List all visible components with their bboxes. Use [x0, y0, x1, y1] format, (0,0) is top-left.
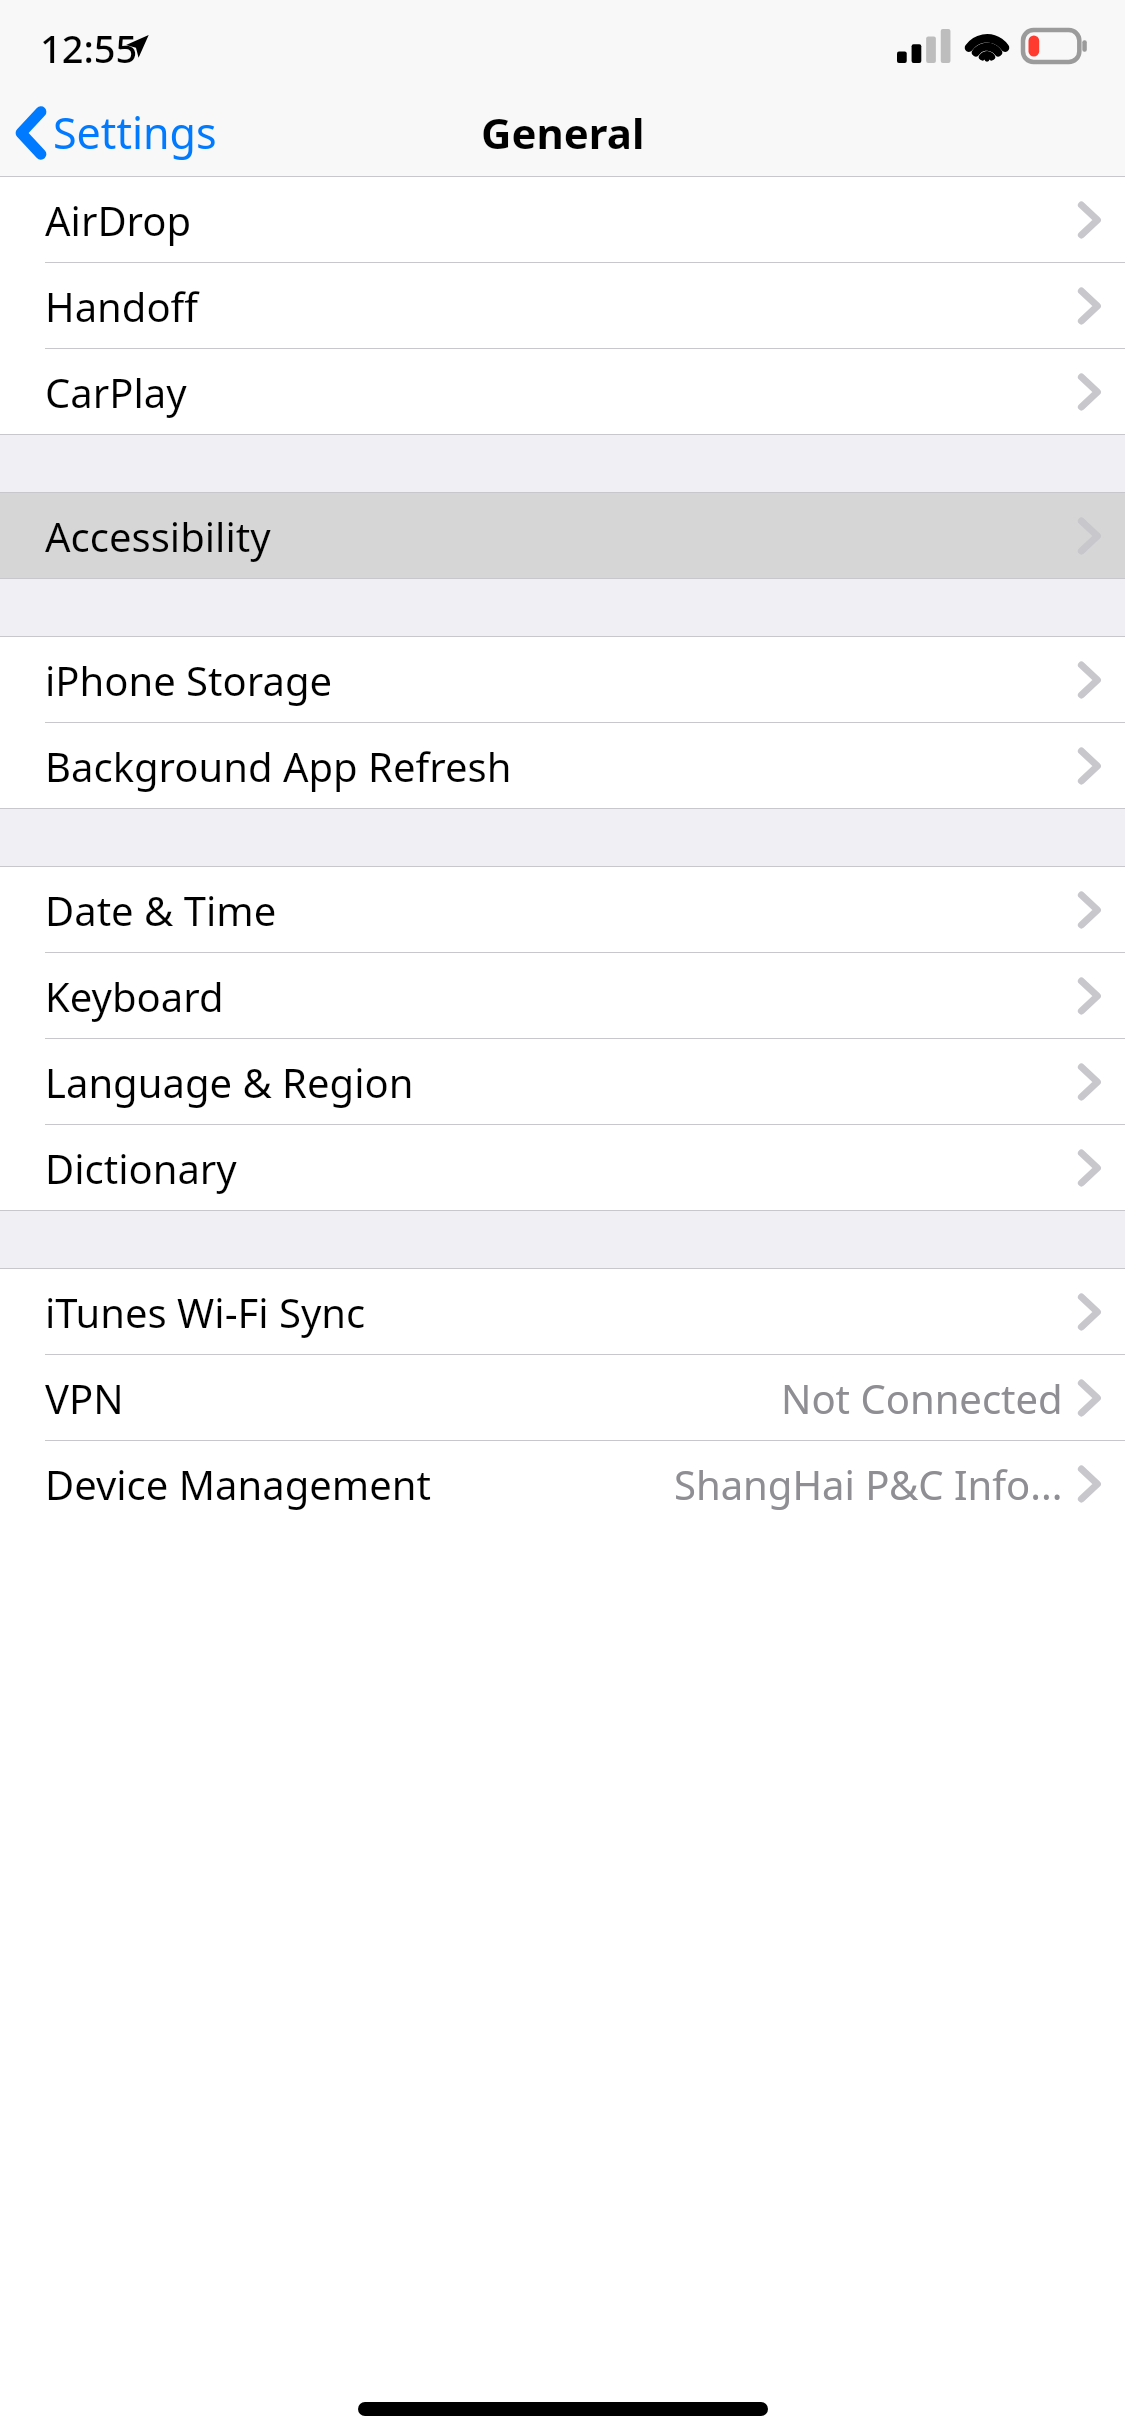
other: Back: [18, 110, 44, 156]
button[interactable]: Keyboard: [0, 953, 1125, 1038]
staticText: VPN: [45, 1371, 124, 1425]
button[interactable]: CarPlay: [0, 349, 1125, 434]
staticText: Keyboard: [45, 969, 224, 1023]
staticText: Settings: [53, 103, 217, 162]
staticText: iTunes Wi-Fi Sync: [45, 1285, 366, 1339]
staticText: iPhone Storage: [45, 653, 333, 707]
button[interactable]: VPN: [0, 1355, 1125, 1440]
staticText: ShangHai P&C Info...: [674, 1457, 1063, 1511]
button[interactable]: AirDrop: [0, 177, 1125, 262]
staticText: Dictionary: [45, 1141, 237, 1195]
button[interactable]: Date & Time: [0, 867, 1125, 952]
staticText: Device Management: [45, 1457, 431, 1511]
button[interactable]: Device Management: [0, 1441, 1125, 1526]
staticText: Date & Time: [45, 883, 277, 937]
button[interactable]: iTunes Wi-Fi Sync: [0, 1269, 1125, 1354]
button[interactable]: Language & Region: [0, 1039, 1125, 1124]
staticText: AirDrop: [45, 193, 192, 247]
staticText: Accessibility: [45, 509, 271, 563]
button[interactable]: Background App Refresh: [0, 723, 1125, 808]
staticText: 12:55: [40, 22, 138, 74]
staticText: General: [481, 104, 645, 161]
staticText: Not Connected: [781, 1371, 1063, 1425]
button[interactable]: iPhone Storage: [0, 637, 1125, 722]
staticText: Background App Refresh: [45, 739, 512, 793]
button[interactable]: Back: [0, 97, 231, 168]
staticText: CarPlay: [45, 365, 187, 419]
button[interactable]: Accessibility: [0, 493, 1125, 578]
button[interactable]: Handoff: [0, 263, 1125, 348]
staticText: Language & Region: [45, 1055, 414, 1109]
button[interactable]: Dictionary: [0, 1125, 1125, 1210]
staticText: Handoff: [45, 279, 199, 333]
